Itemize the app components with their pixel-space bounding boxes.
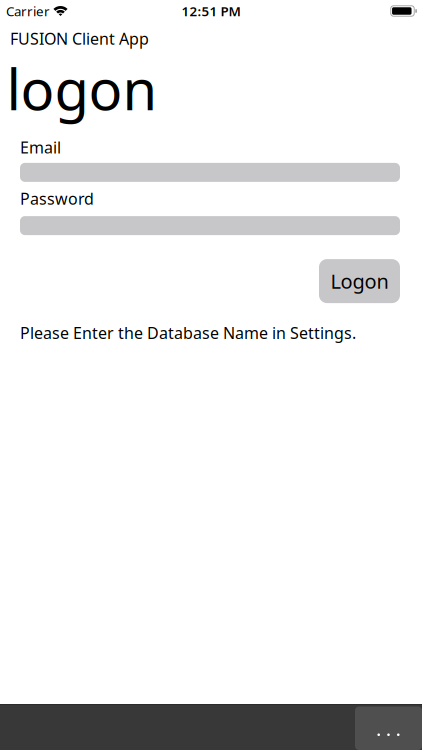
- staticText: Carrier: [6, 2, 50, 20]
- staticText: logon: [6, 51, 157, 126]
- button[interactable]: Logon: [319, 259, 400, 303]
- staticText: 12:51 PM: [181, 2, 240, 20]
- staticText: Email: [20, 137, 61, 158]
- staticText: Logon: [330, 268, 388, 294]
- staticText: Please Enter the Database Name in Settin…: [20, 322, 356, 343]
- staticText: FUSION Client App: [10, 28, 149, 49]
- staticText: Password: [20, 188, 94, 209]
- button[interactable]: More: [355, 706, 422, 750]
